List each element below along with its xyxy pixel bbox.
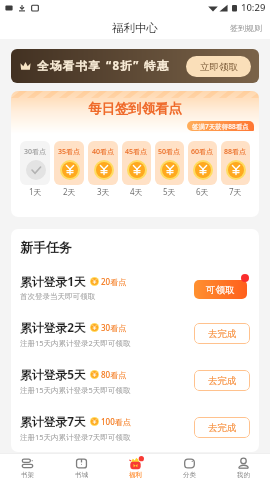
staticText: 3天 bbox=[97, 186, 110, 197]
staticText: 新手任务 bbox=[20, 239, 72, 255]
staticText: 注册15天内累计登录7天即可领取 bbox=[20, 432, 131, 442]
staticText: 20看点 bbox=[101, 276, 127, 287]
staticText: 60看点 bbox=[191, 147, 214, 157]
button[interactable]: 50看点 bbox=[155, 141, 184, 197]
staticText: 去完成 bbox=[208, 328, 237, 340]
button[interactable]: 60看点 bbox=[188, 141, 217, 197]
staticText: 35看点 bbox=[58, 147, 81, 157]
staticText: 去完成 bbox=[208, 375, 237, 387]
button[interactable]: 签到规则 bbox=[230, 23, 270, 33]
staticText: 注册15天内累计登录2天即可领取 bbox=[20, 338, 131, 348]
button[interactable]: 88看点 bbox=[221, 141, 250, 197]
staticText: 40看点 bbox=[92, 147, 115, 157]
button[interactable]: 可领取 bbox=[194, 280, 247, 299]
staticText: 6天 bbox=[196, 186, 209, 197]
staticText: 签满7天获得88看点 bbox=[192, 122, 249, 131]
button[interactable]: 书架 bbox=[0, 454, 54, 480]
staticText: 书城 bbox=[75, 471, 88, 479]
button[interactable]: 立即领取 bbox=[186, 56, 251, 77]
button[interactable]: 书城 bbox=[54, 454, 108, 480]
button[interactable]: 去完成 bbox=[194, 323, 250, 344]
button[interactable]: 全场看书享 “8折” 特惠 bbox=[11, 49, 259, 83]
button[interactable]: 我的 bbox=[216, 454, 270, 480]
button[interactable]: 分类 bbox=[162, 454, 216, 480]
button[interactable]: 去完成 bbox=[194, 417, 250, 438]
staticText: 累计登录1天 bbox=[20, 273, 86, 289]
staticText: 1天 bbox=[29, 186, 42, 197]
staticText: 福利 bbox=[129, 471, 142, 479]
staticText: 10:29 bbox=[241, 1, 266, 14]
staticText: 4天 bbox=[130, 186, 143, 197]
staticText: 全场看书享 “8折” 特惠 bbox=[37, 58, 170, 74]
staticText: 5天 bbox=[163, 186, 176, 197]
staticText: 首次登录当天即可领取 bbox=[20, 292, 95, 301]
button[interactable]: 35看点 bbox=[54, 141, 84, 197]
button[interactable]: 福利 bbox=[108, 454, 162, 480]
staticText: 7天 bbox=[229, 186, 242, 197]
staticText: 立即领取 bbox=[200, 61, 238, 73]
staticText: 80看点 bbox=[101, 369, 127, 380]
staticText: 100看点 bbox=[101, 416, 131, 427]
staticText: 我的 bbox=[237, 471, 250, 479]
button[interactable]: 去完成 bbox=[194, 370, 250, 391]
staticText: 累计登录2天 bbox=[20, 319, 86, 335]
staticText: 88看点 bbox=[224, 147, 247, 157]
staticText: 50看点 bbox=[158, 147, 181, 157]
staticText: 福利中心 bbox=[112, 21, 158, 35]
staticText: 书架 bbox=[21, 471, 34, 479]
staticText: 可领取 bbox=[206, 284, 235, 296]
staticText: 45看点 bbox=[125, 147, 148, 157]
staticText: 每日签到领看点 bbox=[11, 100, 259, 117]
button[interactable]: 40看点 bbox=[88, 141, 118, 197]
button[interactable]: 30看点 bbox=[20, 141, 50, 197]
staticText: 累计登录7天 bbox=[20, 413, 86, 429]
staticText: 分类 bbox=[183, 471, 196, 479]
button[interactable]: 45看点 bbox=[122, 141, 151, 197]
staticText: 30看点 bbox=[101, 322, 127, 333]
staticText: 去完成 bbox=[208, 422, 237, 434]
staticText: 30看点 bbox=[24, 147, 47, 157]
staticText: 累计登录5天 bbox=[20, 366, 86, 382]
staticText: 2天 bbox=[63, 186, 76, 197]
staticText: 注册15天内累计登录5天即可领取 bbox=[20, 385, 131, 395]
